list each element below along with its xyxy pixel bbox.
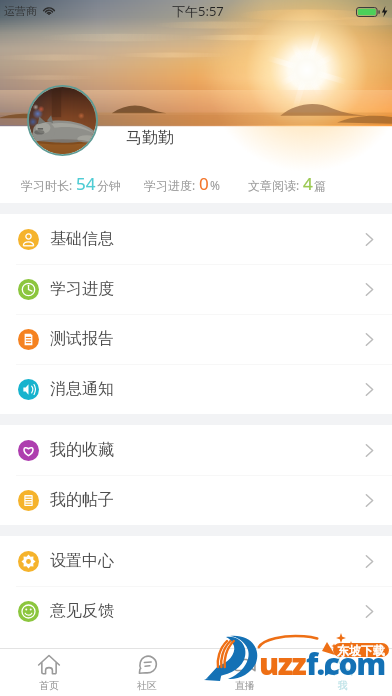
staticText: 测试报告 — [50, 329, 114, 349]
staticText: 篇 — [314, 178, 326, 193]
staticText: 消息通知 — [50, 379, 114, 399]
button[interactable]: 我 — [294, 649, 392, 696]
staticText: f.com — [306, 643, 385, 684]
staticText: 设置中心 — [50, 551, 114, 571]
staticText: 学习进度: — [144, 177, 196, 193]
button[interactable]: 我的帖子 — [0, 475, 392, 525]
staticText: 0 — [199, 172, 209, 195]
staticText: 社区 — [137, 679, 157, 692]
staticText: 54 — [76, 172, 96, 195]
staticText: 运营商 — [4, 4, 37, 18]
staticText: 分钟 — [97, 178, 121, 193]
button[interactable]: 学习进度 — [0, 264, 392, 314]
staticText: 意见反馈 — [50, 601, 114, 621]
staticText: uzz — [259, 643, 306, 684]
staticText: 首页 — [39, 679, 59, 692]
button[interactable]: 首页 — [0, 649, 98, 696]
button[interactable]: 直播 — [196, 649, 294, 696]
staticText: 马勤勤 — [126, 128, 174, 148]
staticText: % — [210, 177, 220, 193]
staticText: 我的帖子 — [50, 490, 114, 510]
staticText: 直播 — [235, 679, 255, 692]
staticText: 我的收藏 — [50, 440, 114, 460]
staticText: 文章阅读: — [248, 177, 300, 193]
staticText: 我 — [338, 679, 348, 692]
staticText: 基础信息 — [50, 229, 114, 249]
button[interactable]: 意见反馈 — [0, 586, 392, 636]
button[interactable]: 基础信息 — [0, 214, 392, 264]
staticText: 4 — [303, 172, 313, 195]
staticText: 学习进度 — [50, 279, 114, 299]
button[interactable]: 我的收藏 — [0, 425, 392, 475]
staticText: 学习时长: — [21, 177, 73, 193]
button[interactable]: 消息通知 — [0, 364, 392, 414]
staticText: 下午5:57 — [172, 2, 224, 20]
button[interactable]: 社区 — [98, 649, 196, 696]
button[interactable]: 设置中心 — [0, 536, 392, 586]
staticText: 东坡下载 — [337, 643, 385, 657]
button[interactable]: 测试报告 — [0, 314, 392, 364]
